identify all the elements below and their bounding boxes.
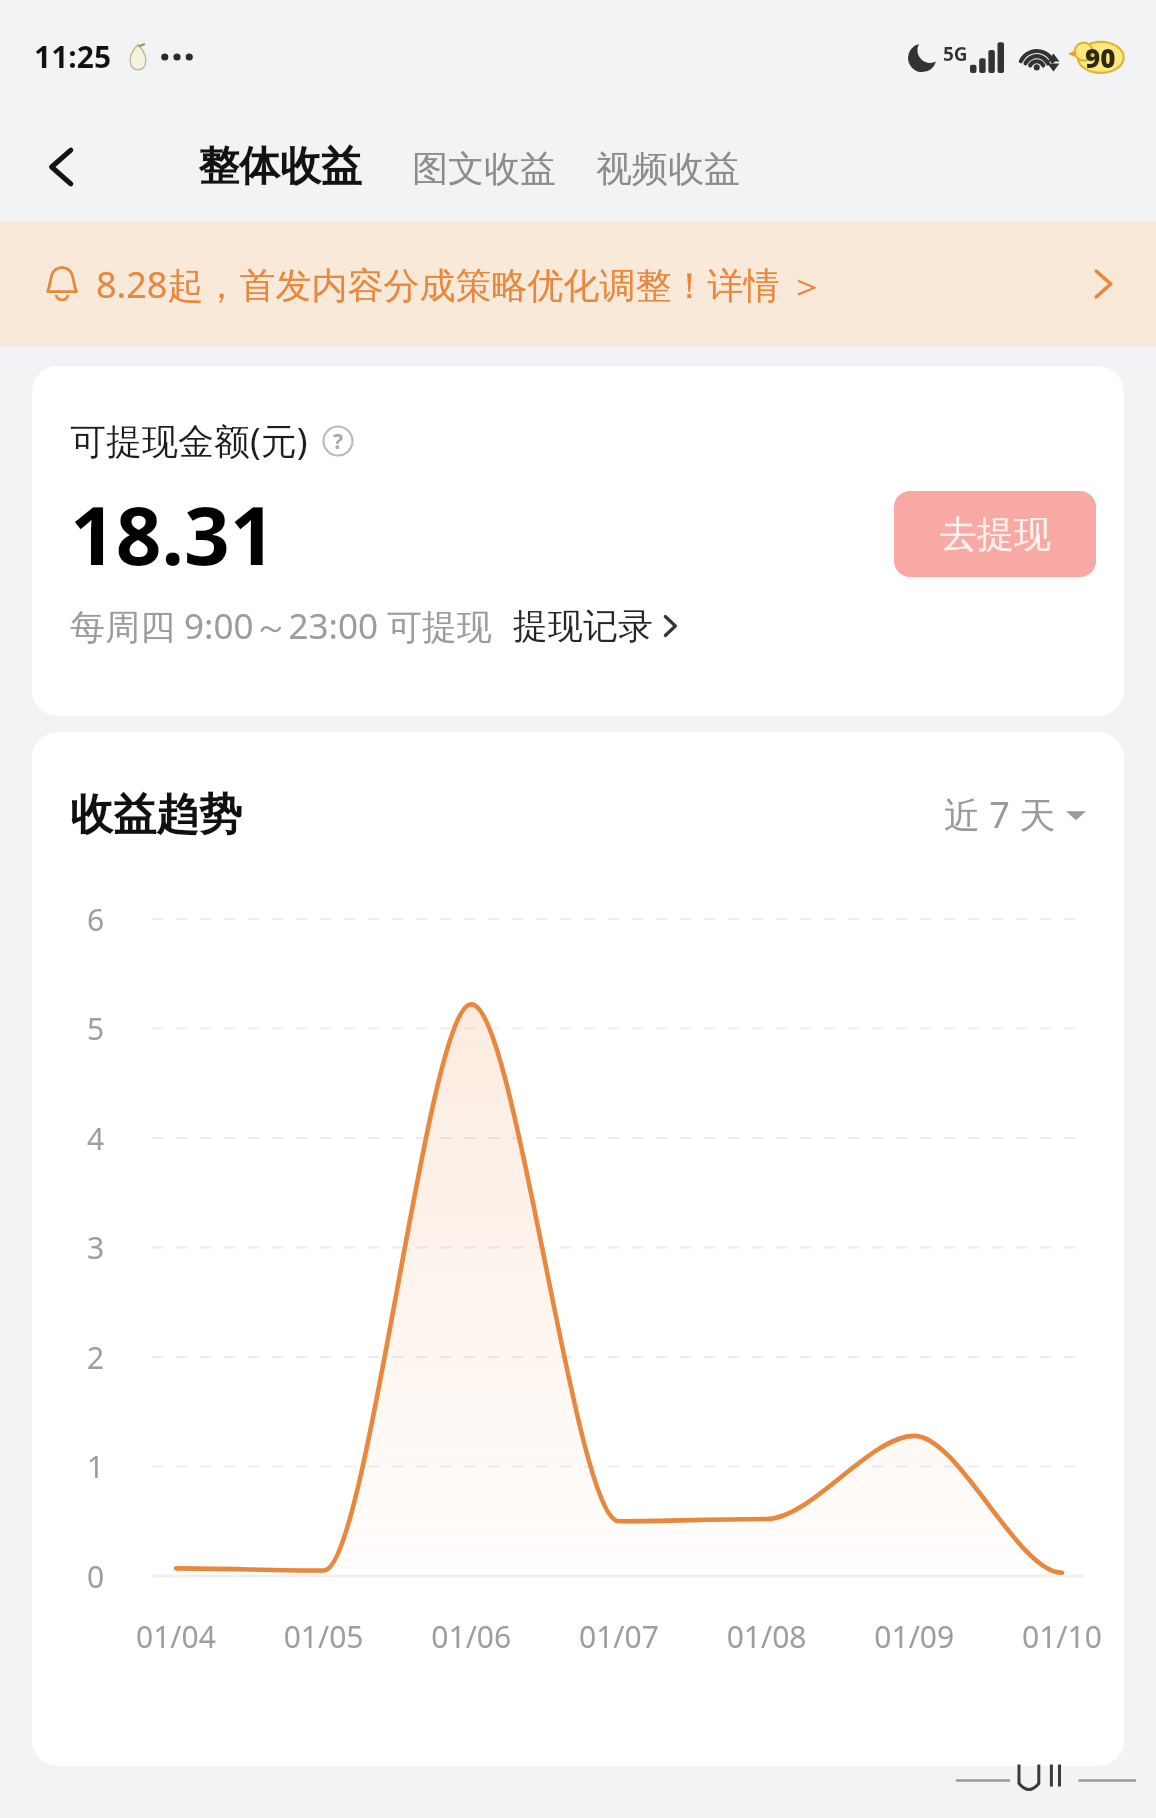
- button[interactable]: 近 7 天: [938, 784, 1092, 845]
- staticText: 近 7 天: [944, 790, 1056, 839]
- staticText: ?: [333, 427, 344, 456]
- button[interactable]: 视频收益: [594, 144, 742, 193]
- staticText: 5G: [943, 41, 968, 67]
- button[interactable]: 图文收益: [410, 144, 558, 193]
- staticText: 收益趋势: [70, 788, 242, 842]
- staticText: 去提现: [940, 511, 1051, 558]
- staticText: 18.31: [70, 479, 276, 588]
- button[interactable]: 整体收益: [196, 141, 364, 193]
- staticText: 可提现金额(元): [70, 416, 308, 465]
- button[interactable]: Back: [28, 133, 96, 201]
- staticText: 8.28起，首发内容分成策略优化调整！详情 ＞: [96, 260, 825, 309]
- staticText: 提现记录: [513, 604, 653, 648]
- button[interactable]: 提现记录: [513, 604, 679, 648]
- staticText: 90: [1085, 40, 1116, 75]
- staticText: 每周四 9:00～23:00 可提现: [70, 602, 493, 650]
- button[interactable]: 说明: [320, 423, 356, 459]
- staticText: 视频收益: [596, 146, 740, 191]
- button[interactable]: 8.28起，首发内容分成策略优化调整！详情 ＞: [0, 222, 1156, 346]
- button[interactable]: 去提现: [894, 491, 1096, 577]
- staticText: 图文收益: [412, 146, 556, 191]
- staticText: 11:25: [34, 36, 112, 77]
- staticText: 整体收益: [198, 141, 362, 193]
